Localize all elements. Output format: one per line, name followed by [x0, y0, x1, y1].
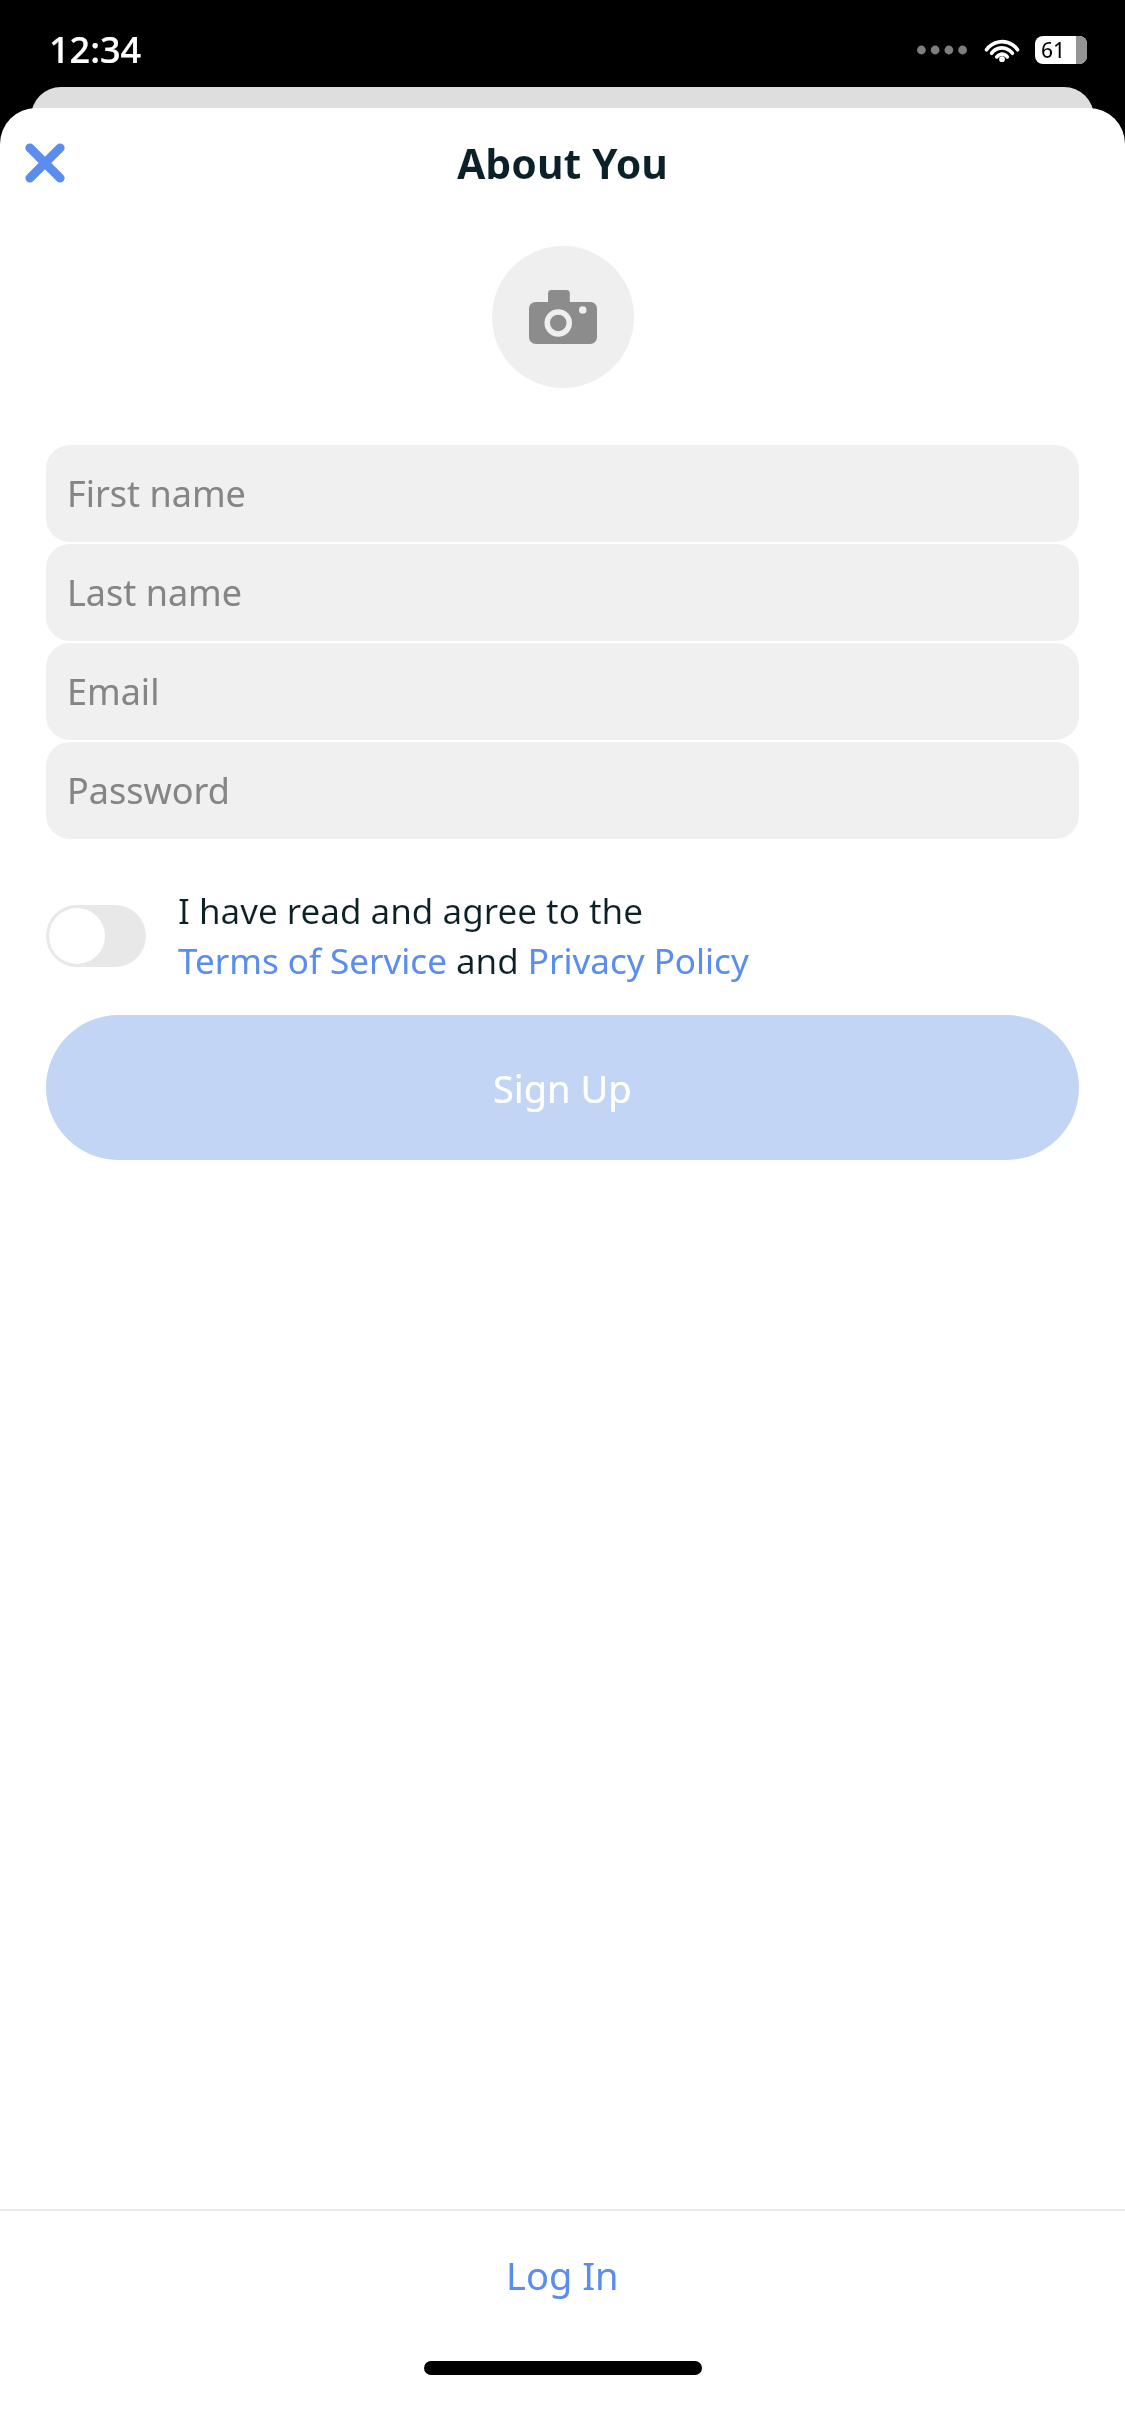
button[interactable]: Close [12, 130, 78, 196]
staticText: About You [457, 135, 668, 191]
staticText: Password [67, 766, 230, 815]
staticText: Log In [506, 2249, 619, 2301]
staticText: Sign Up [493, 1062, 632, 1114]
button[interactable]: Last name [46, 544, 1079, 641]
staticText: Email [67, 667, 160, 716]
staticText: 61 [1041, 36, 1066, 64]
staticText: I have read and agree to the [178, 887, 643, 935]
staticText: Terms of Service and Privacy Policy [178, 937, 749, 985]
button[interactable]: Email [46, 643, 1079, 740]
button[interactable]: Sign Up [46, 1015, 1079, 1160]
button[interactable]: I have read and agree to the [46, 887, 1079, 985]
staticText: Last name [67, 568, 243, 617]
staticText: 12:34 [49, 25, 142, 74]
button[interactable]: Log In [0, 2211, 1125, 2339]
button[interactable]: Password [46, 742, 1079, 839]
staticText: First name [67, 469, 246, 518]
button[interactable]: Add profile photo [492, 246, 634, 388]
button[interactable]: First name [46, 445, 1079, 542]
